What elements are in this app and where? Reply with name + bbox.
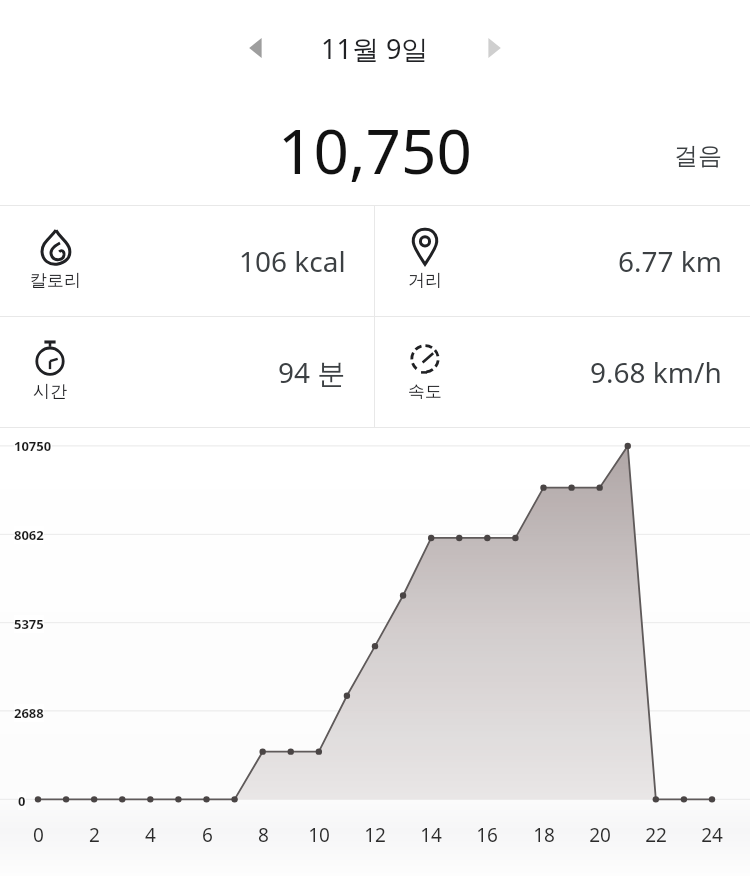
staticText: 16 <box>476 822 498 848</box>
staticText: 6 <box>202 822 213 848</box>
button[interactable]: Calories <box>0 206 374 316</box>
button[interactable]: Previous day <box>234 26 278 70</box>
button[interactable]: Speed <box>375 317 750 427</box>
staticText: 106 kcal <box>239 242 346 280</box>
staticText: 10,750 <box>278 108 472 192</box>
other: Distance <box>405 227 445 267</box>
other: Time <box>30 338 70 378</box>
staticText: 4 <box>145 822 156 848</box>
staticText: 22 <box>645 822 667 848</box>
staticText: 칼로리 <box>30 270 81 291</box>
staticText: 20 <box>589 822 611 848</box>
staticText: 6.77 km <box>618 242 722 280</box>
staticText: 속도 <box>408 381 442 402</box>
staticText: 5375 <box>14 615 44 633</box>
staticText: 10 <box>308 822 330 848</box>
button[interactable]: Next day <box>472 26 516 70</box>
staticText: 94 분 <box>278 353 346 391</box>
button[interactable]: Distance <box>375 206 750 316</box>
other: Speed <box>405 338 445 378</box>
staticText: 9.68 km/h <box>590 353 722 391</box>
staticText: 8062 <box>14 526 44 544</box>
staticText: 10750 <box>14 437 52 455</box>
button[interactable]: 11월 9일 <box>300 30 450 67</box>
staticText: 0 <box>33 822 44 848</box>
staticText: 11월 9일 <box>321 30 429 67</box>
staticText: 24 <box>701 822 723 848</box>
staticText: 12 <box>364 822 386 848</box>
staticText: 8 <box>258 822 269 848</box>
staticText: 18 <box>533 822 555 848</box>
other: Calories <box>36 227 76 267</box>
staticText: 거리 <box>408 270 442 291</box>
button[interactable]: 10750 <box>0 428 750 876</box>
staticText: 2 <box>89 822 100 848</box>
staticText: 걸음 <box>674 141 722 171</box>
staticText: 14 <box>420 822 442 848</box>
staticText: 2688 <box>14 704 44 722</box>
staticText: 0 <box>18 792 26 810</box>
button[interactable]: Time <box>0 317 374 427</box>
staticText: 시간 <box>33 381 67 402</box>
